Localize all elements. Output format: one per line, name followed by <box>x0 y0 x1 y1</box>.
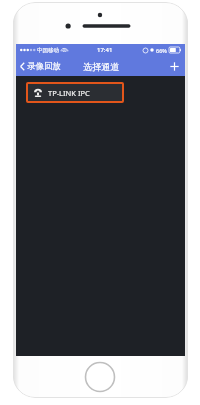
staticText: 选择通道 <box>83 61 119 72</box>
staticText: 中国移动 <box>37 47 59 54</box>
button[interactable]: TP-LINK IPC <box>28 84 122 101</box>
button[interactable]: Add channel <box>163 56 185 76</box>
button[interactable]: 录像回放 <box>16 56 67 76</box>
staticText: TP-LINK IPC <box>48 88 90 98</box>
other: Home <box>85 362 115 392</box>
staticText: 17:41 <box>97 46 113 54</box>
staticText: 录像回放 <box>27 61 61 72</box>
staticText: 66% <box>156 47 167 54</box>
